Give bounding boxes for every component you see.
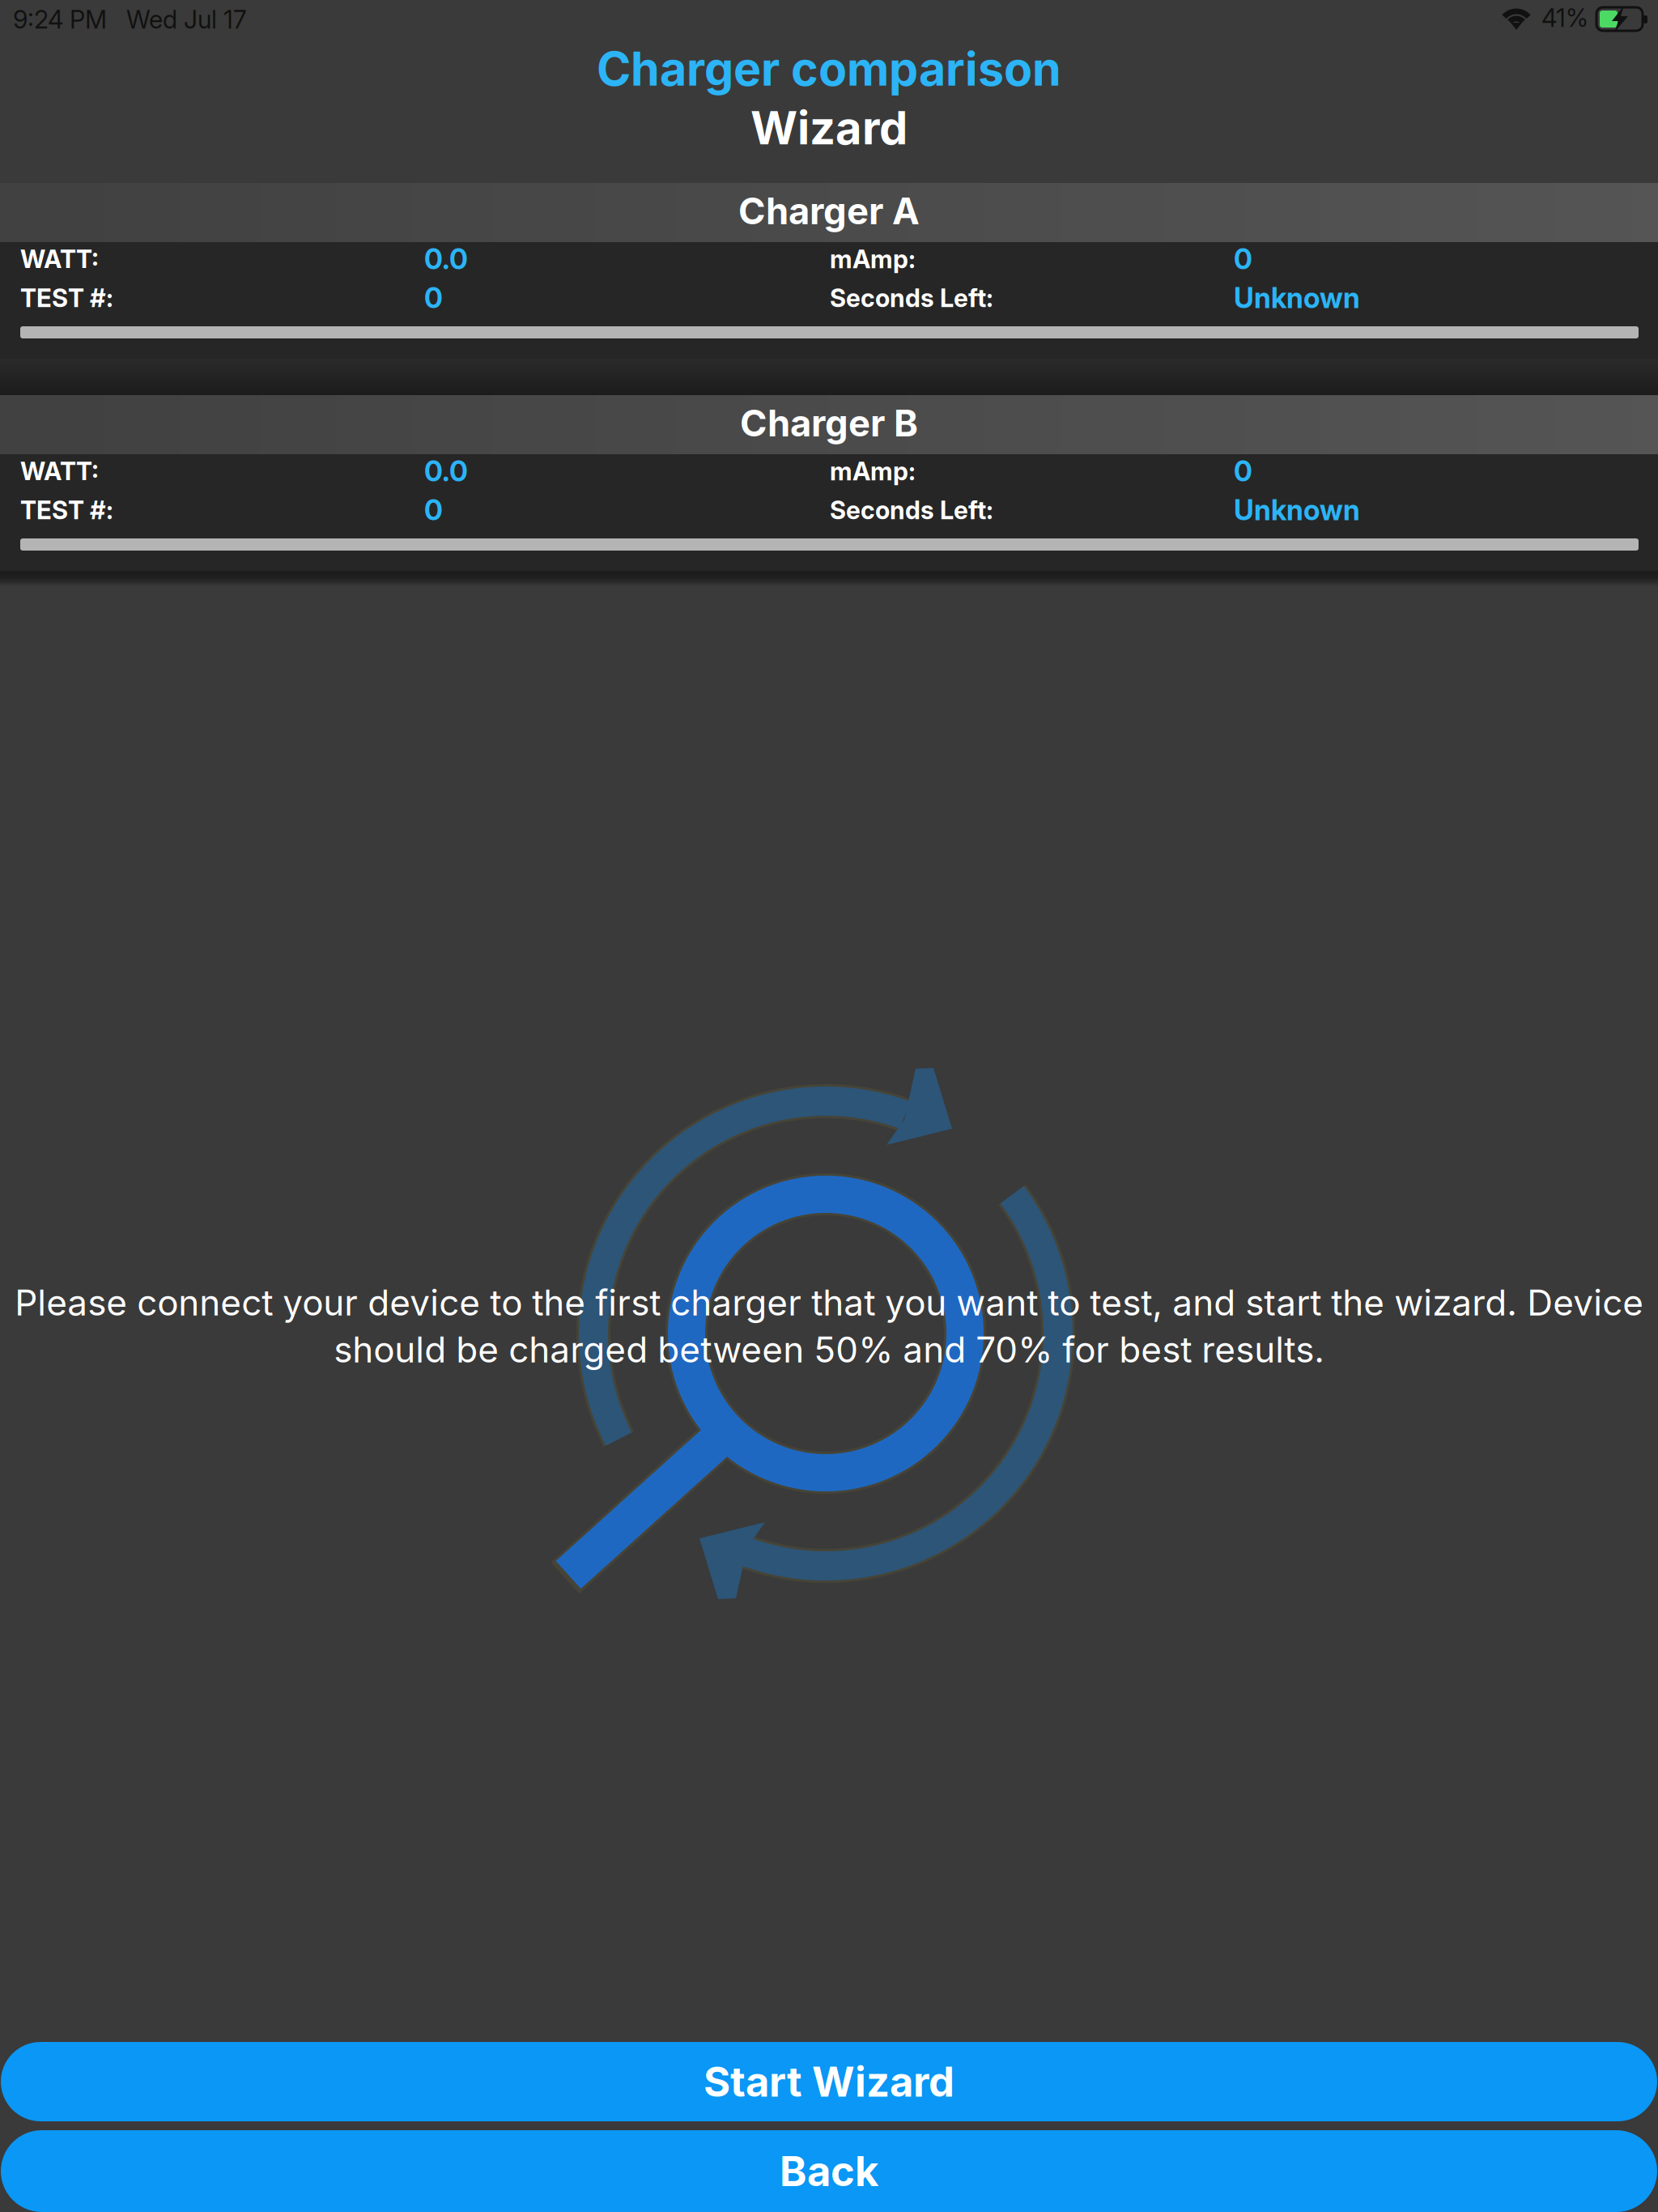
- staticText: 0.0: [424, 242, 468, 276]
- staticText: 0: [424, 493, 443, 527]
- staticText: 0: [424, 281, 443, 315]
- staticText: Unknown: [1234, 281, 1360, 315]
- staticText: Seconds Left:: [830, 495, 993, 525]
- staticText: Charger A: [738, 189, 920, 233]
- staticText: Wizard: [750, 100, 908, 155]
- staticText: mAmp:: [830, 456, 916, 486]
- staticText: 0: [1234, 242, 1252, 276]
- staticText: 0: [1234, 454, 1252, 488]
- staticText: TEST #:: [20, 495, 113, 525]
- staticText: mAmp:: [830, 244, 916, 274]
- button[interactable]: Start Wizard: [1, 2042, 1657, 2121]
- staticText: Charger comparison: [597, 41, 1061, 97]
- staticText: Back: [780, 2146, 878, 2196]
- staticText: 41%: [1541, 3, 1588, 33]
- staticText: WATT:: [20, 244, 99, 274]
- staticText: Seconds Left:: [830, 283, 993, 313]
- staticText: Charger B: [740, 401, 918, 445]
- staticText: 0.0: [424, 454, 468, 488]
- staticText: Please connect your device to the first …: [15, 1281, 1643, 1371]
- staticText: WATT:: [20, 456, 99, 486]
- staticText: 9:24 PM Wed Jul 17: [13, 4, 247, 34]
- staticText: TEST #:: [20, 283, 113, 313]
- staticText: Unknown: [1234, 493, 1360, 527]
- button[interactable]: Back: [1, 2130, 1657, 2212]
- staticText: Start Wizard: [704, 2057, 954, 2106]
